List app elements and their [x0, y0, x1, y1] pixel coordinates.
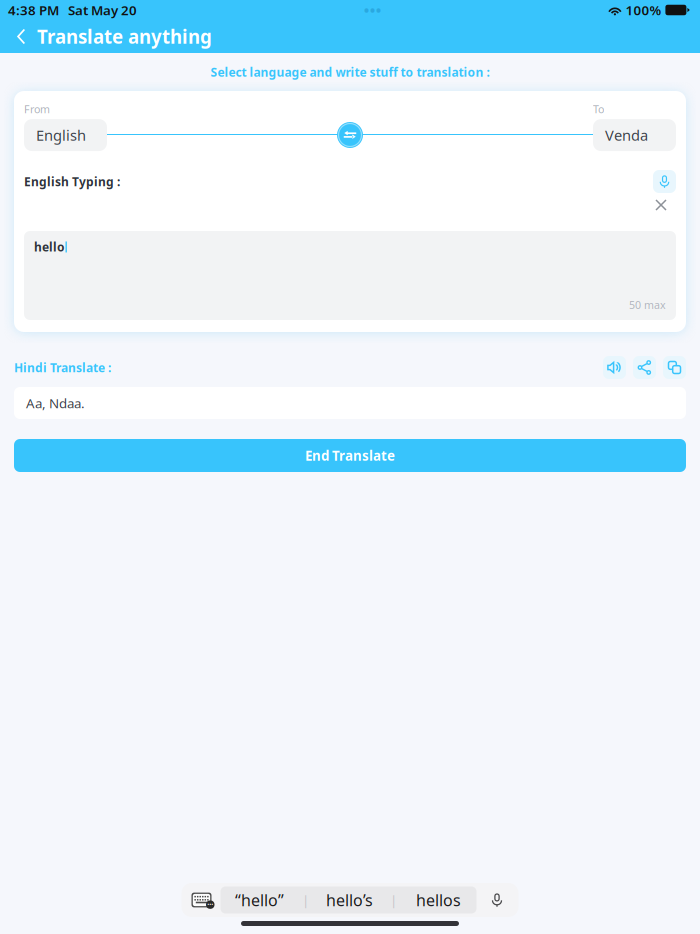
- staticText: hellos: [416, 889, 461, 911]
- staticText: Aa, Ndaa.: [26, 394, 85, 412]
- button[interactable]: Venda: [593, 119, 676, 151]
- button[interactable]: Dictate: [476, 886, 517, 914]
- staticText: |: [390, 891, 397, 909]
- button[interactable]: Keyboard options: [182, 886, 220, 914]
- button[interactable]: Back: [8, 20, 34, 53]
- button[interactable]: Share: [633, 356, 656, 379]
- staticText: Sat May 20: [68, 1, 137, 19]
- staticText: •••: [207, 901, 213, 908]
- button[interactable]: Speak translation: [603, 356, 626, 379]
- button[interactable]: Clear text: [650, 195, 672, 215]
- staticText: Translate anything: [37, 24, 212, 49]
- button[interactable]: Copy: [663, 356, 686, 379]
- staticText: |: [302, 891, 309, 909]
- staticText: 100%: [625, 1, 661, 19]
- staticText: Hindi Translate :: [14, 359, 111, 375]
- staticText: From: [24, 102, 50, 116]
- staticText: Venda: [605, 125, 648, 145]
- staticText: Select language and write stuff to trans…: [210, 64, 489, 80]
- button[interactable]: English: [24, 119, 107, 151]
- staticText: English: [36, 125, 86, 145]
- staticText: hello: [34, 239, 65, 255]
- staticText: 50 max: [629, 298, 666, 312]
- staticText: End Translate: [305, 447, 395, 464]
- staticText: 4:38 PM: [8, 1, 59, 19]
- staticText: English Typing :: [24, 173, 120, 189]
- staticText: •••: [364, 0, 382, 20]
- button[interactable]: Voice input: [653, 170, 676, 193]
- button[interactable]: End Translate: [14, 439, 686, 472]
- staticText: “hello”: [235, 889, 284, 911]
- staticText: hello’s: [326, 889, 373, 911]
- staticText: To: [593, 102, 604, 116]
